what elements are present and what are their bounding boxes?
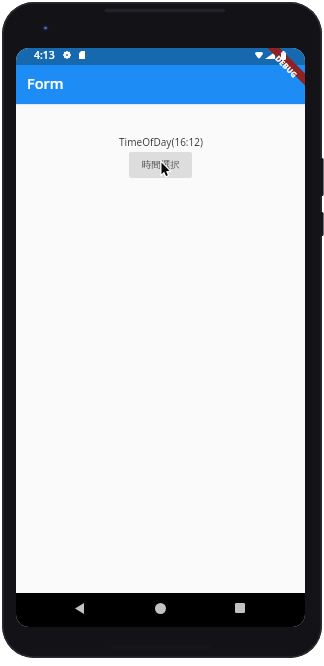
button[interactable]: Recent apps [224, 595, 256, 621]
button[interactable]: 時間選択 [129, 152, 192, 178]
staticText: DEBUG [273, 53, 300, 80]
staticText: 時間選択 [142, 159, 180, 171]
staticText: TimeOfDay(16:12) [119, 135, 203, 149]
staticText: 4:13 [34, 48, 55, 62]
button[interactable]: Back [63, 595, 95, 621]
staticText: Form [27, 73, 64, 93]
button[interactable]: Home [144, 595, 176, 621]
